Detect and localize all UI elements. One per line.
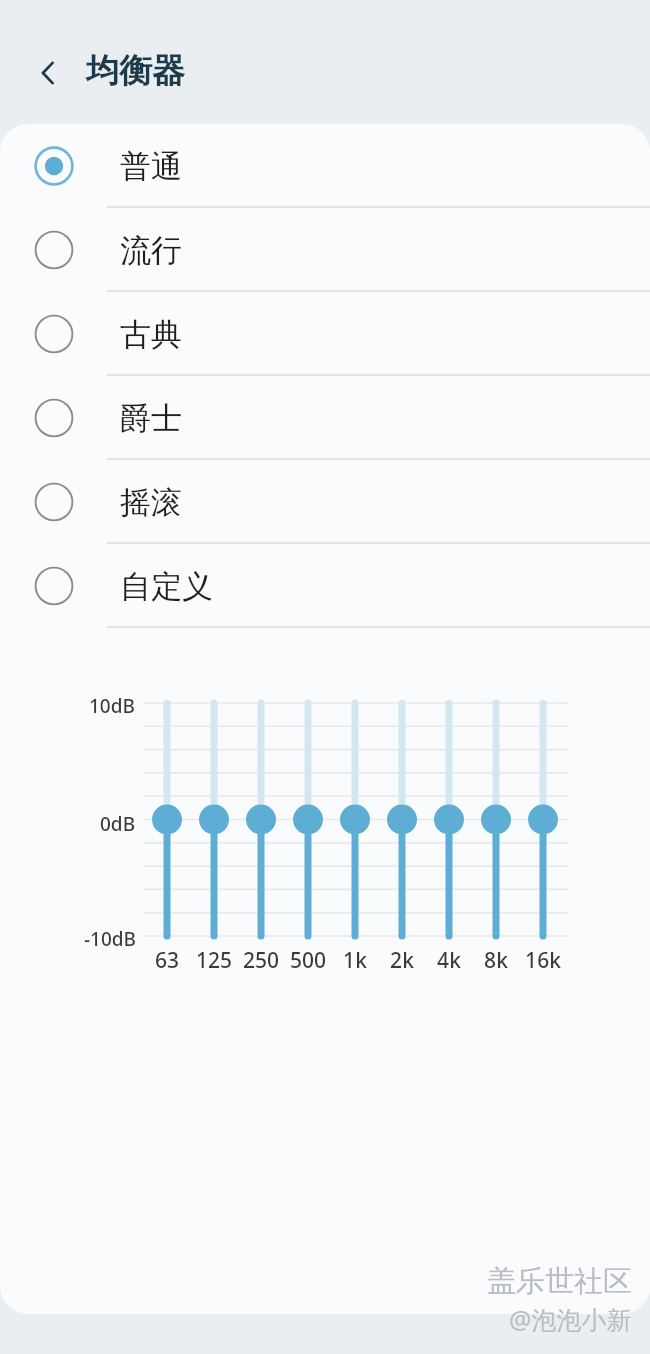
- staticText: 63: [137, 946, 197, 975]
- staticText: 自定义: [120, 567, 213, 606]
- staticText: 8k: [466, 946, 526, 975]
- staticText: 盖乐世社区: [487, 1263, 632, 1300]
- staticText: 0dB: [100, 811, 136, 837]
- button[interactable]: 摇滚: [0, 460, 650, 544]
- button[interactable]: 流行: [0, 208, 650, 292]
- staticText: 500: [278, 946, 338, 975]
- staticText: 10dB: [89, 693, 135, 719]
- button[interactable]: 自定义: [0, 544, 650, 628]
- staticText: 1k: [325, 946, 385, 975]
- staticText: 2k: [372, 946, 432, 975]
- button[interactable]: 爵士: [0, 376, 650, 460]
- staticText: 4k: [419, 946, 479, 975]
- staticText: -10dB: [84, 926, 137, 952]
- button[interactable]: 古典: [0, 292, 650, 376]
- staticText: 普通: [120, 147, 182, 186]
- button[interactable]: Back: [26, 50, 72, 96]
- staticText: 16k: [513, 946, 573, 975]
- staticText: 摇滚: [120, 483, 182, 522]
- staticText: 古典: [120, 315, 182, 354]
- staticText: 均衡器: [86, 50, 185, 92]
- staticText: 爵士: [120, 399, 182, 438]
- button[interactable]: 普通: [0, 124, 650, 208]
- staticText: @泡泡小新: [509, 1302, 632, 1336]
- staticText: 125: [184, 946, 244, 975]
- staticText: 250: [231, 946, 291, 975]
- staticText: 流行: [120, 231, 182, 270]
